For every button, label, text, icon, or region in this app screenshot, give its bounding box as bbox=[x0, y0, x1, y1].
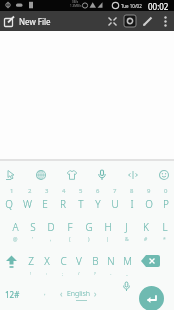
staticText: _ bbox=[126, 271, 128, 276]
staticText: # bbox=[144, 236, 148, 243]
staticText: D bbox=[47, 220, 55, 234]
staticText: Tue 10/02 bbox=[121, 3, 142, 9]
staticText: 5 bbox=[79, 187, 83, 195]
staticText: ' bbox=[32, 236, 34, 243]
staticText: 9 bbox=[147, 187, 151, 195]
button[interactable] bbox=[64, 167, 80, 183]
button[interactable] bbox=[4, 16, 15, 27]
staticText: English bbox=[67, 289, 90, 299]
staticText: Q bbox=[5, 197, 13, 211]
staticText: ; bbox=[62, 271, 64, 276]
staticText: 0B/s bbox=[72, 0, 79, 4]
staticText: ) bbox=[88, 236, 90, 243]
button[interactable]: J bbox=[117, 219, 136, 235]
button[interactable] bbox=[140, 13, 156, 29]
button[interactable] bbox=[94, 167, 110, 183]
staticText: : bbox=[46, 271, 48, 276]
staticText: * bbox=[163, 236, 166, 243]
staticText: 6 bbox=[96, 187, 100, 195]
button[interactable]: 12# bbox=[5, 289, 20, 300]
button[interactable] bbox=[122, 13, 138, 29]
staticText: , bbox=[50, 236, 52, 243]
staticText: 7 bbox=[113, 187, 117, 195]
staticText: G bbox=[85, 220, 93, 234]
button[interactable] bbox=[158, 14, 172, 28]
staticText: R bbox=[60, 197, 66, 211]
button[interactable]: E bbox=[36, 195, 54, 213]
button[interactable]: D bbox=[42, 219, 60, 235]
staticText: | bbox=[106, 236, 109, 243]
staticText: I bbox=[130, 197, 134, 211]
button[interactable] bbox=[139, 286, 164, 310]
button[interactable]: Q bbox=[0, 195, 18, 213]
staticText: K bbox=[143, 220, 149, 234]
staticText: ! bbox=[30, 271, 32, 276]
button[interactable]: I bbox=[123, 195, 140, 213]
button[interactable]: U bbox=[106, 195, 123, 213]
button[interactable]: B bbox=[87, 252, 103, 270]
staticText: J bbox=[125, 220, 128, 234]
button[interactable]: H bbox=[98, 219, 117, 235]
staticText: F bbox=[67, 220, 73, 234]
staticText: 00:02 bbox=[148, 1, 169, 12]
button[interactable]: C bbox=[55, 252, 71, 270]
button[interactable]: S bbox=[24, 219, 42, 235]
button[interactable]: ‹ bbox=[60, 288, 97, 299]
staticText: & bbox=[125, 236, 129, 243]
staticText: › bbox=[94, 288, 97, 299]
staticText: 4 bbox=[62, 187, 66, 195]
button[interactable]: N bbox=[103, 252, 119, 270]
staticText: P bbox=[163, 197, 169, 211]
button[interactable]: W bbox=[18, 195, 36, 213]
button[interactable]: New File bbox=[19, 16, 51, 27]
staticText: ? bbox=[94, 271, 96, 276]
staticText: E bbox=[42, 197, 48, 211]
button[interactable] bbox=[2, 167, 18, 183]
staticText: , bbox=[44, 289, 46, 297]
staticText: T bbox=[78, 197, 84, 211]
staticText: @ bbox=[13, 236, 18, 243]
button[interactable] bbox=[122, 282, 131, 291]
staticText: V bbox=[76, 254, 82, 268]
button[interactable]: O bbox=[140, 195, 157, 213]
staticText: O bbox=[145, 197, 153, 211]
button[interactable]: T bbox=[72, 195, 89, 213]
staticText: A bbox=[12, 220, 19, 234]
staticText: - bbox=[110, 271, 112, 276]
button[interactable] bbox=[104, 13, 120, 29]
staticText: W bbox=[23, 197, 32, 211]
staticText: 1.3MB/s bbox=[70, 4, 82, 8]
staticText: L bbox=[162, 220, 168, 234]
button[interactable]: V bbox=[71, 252, 87, 270]
staticText: / bbox=[78, 271, 80, 276]
button[interactable]: Z bbox=[22, 252, 39, 270]
button[interactable] bbox=[125, 167, 141, 183]
staticText: M bbox=[123, 254, 132, 268]
staticText: Y bbox=[95, 197, 101, 211]
button[interactable]: M bbox=[119, 252, 135, 270]
button[interactable]: X bbox=[39, 252, 55, 270]
staticText: B bbox=[92, 254, 99, 268]
staticText: H bbox=[104, 220, 112, 234]
button[interactable] bbox=[156, 167, 172, 183]
staticText: 0 bbox=[164, 187, 168, 195]
staticText: 1 bbox=[10, 187, 14, 195]
button[interactable]: L bbox=[155, 219, 174, 235]
button[interactable]: F bbox=[60, 219, 79, 235]
button[interactable]: Y bbox=[89, 195, 106, 213]
button[interactable]: K bbox=[136, 219, 155, 235]
staticText: N bbox=[107, 254, 115, 268]
staticText: U bbox=[111, 197, 119, 211]
button[interactable] bbox=[135, 252, 165, 270]
button[interactable]: R bbox=[54, 195, 72, 213]
button[interactable]: G bbox=[79, 219, 98, 235]
button[interactable] bbox=[0, 252, 22, 270]
staticText: 3 bbox=[45, 187, 49, 195]
button[interactable]: P bbox=[157, 195, 174, 213]
button[interactable]: A bbox=[6, 219, 24, 235]
button[interactable] bbox=[33, 167, 49, 183]
staticText: ‹ bbox=[60, 288, 63, 299]
staticText: Z bbox=[28, 254, 34, 268]
staticText: ( bbox=[69, 236, 71, 243]
staticText: X bbox=[44, 254, 50, 268]
